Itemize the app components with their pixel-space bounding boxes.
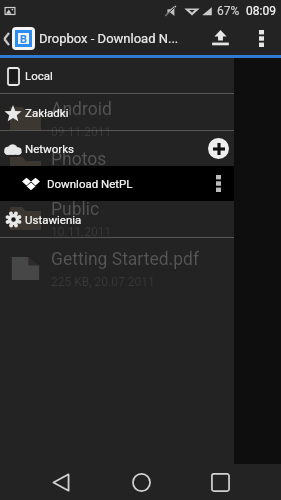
- button[interactable]: Item options: [208, 166, 228, 201]
- button[interactable]: Recents: [202, 464, 238, 500]
- staticText: Zakładki: [25, 106, 69, 119]
- staticText: Photos: [51, 149, 107, 170]
- button[interactable]: Public: [0, 192, 281, 242]
- staticText: 67%: [217, 4, 240, 18]
- staticText: 08:09: [246, 4, 276, 18]
- button[interactable]: Local: [0, 58, 234, 93]
- staticText: Dropbox - Download N...: [39, 31, 199, 46]
- button[interactable]: More options: [241, 22, 281, 55]
- button[interactable]: Download NetPL: [0, 166, 234, 201]
- staticText: Android: [51, 99, 112, 120]
- button[interactable]: Photos: [0, 142, 281, 192]
- button[interactable]: Back: [43, 464, 79, 500]
- staticText: 09.11.2011: [51, 175, 112, 189]
- button[interactable]: Android: [0, 92, 281, 142]
- staticText: Getting Started.pdf: [51, 249, 199, 270]
- button[interactable]: Networks: [0, 131, 234, 166]
- staticText: Public: [51, 199, 100, 220]
- button[interactable]: Add network: [208, 138, 229, 159]
- staticText: B: [20, 33, 28, 44]
- staticText: Local: [25, 69, 53, 82]
- button[interactable]: Navigate up: [0, 22, 39, 55]
- staticText: Ustawienia: [25, 213, 82, 226]
- button[interactable]: Zakładki: [0, 94, 234, 130]
- button[interactable]: Home: [123, 464, 159, 500]
- staticText: Download NetPL: [47, 177, 133, 190]
- button[interactable]: Ustawienia: [0, 201, 234, 237]
- staticText: 225 KB, 20.07.2011: [51, 275, 155, 289]
- staticText: Networks: [25, 142, 74, 155]
- button[interactable]: Upload: [199, 22, 241, 55]
- staticText: 10.11.2011: [51, 225, 112, 239]
- staticText: 09.11.2011: [51, 125, 112, 139]
- button[interactable]: Getting Started.pdf: [0, 242, 281, 292]
